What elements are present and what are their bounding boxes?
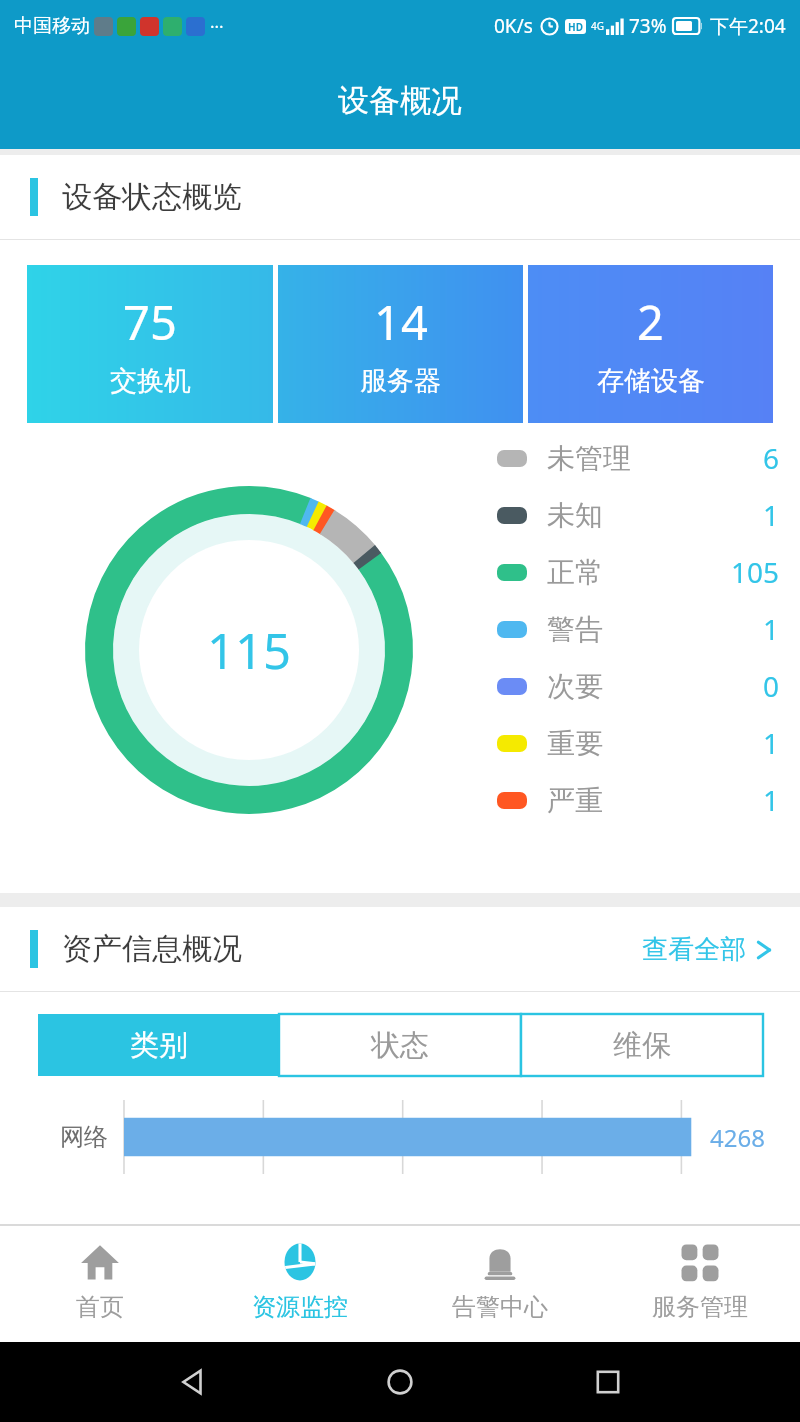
button[interactable]: 告警中心: [400, 1226, 600, 1342]
staticText: 资产信息概况: [62, 930, 242, 968]
staticText: 设备状态概览: [62, 178, 242, 216]
staticText: 1: [763, 496, 780, 534]
staticText: 4268: [710, 1121, 765, 1154]
staticText: 服务管理: [652, 1292, 748, 1322]
staticText: 未管理: [547, 441, 631, 476]
staticText: 维保: [613, 1027, 671, 1064]
staticText: 状态: [371, 1027, 429, 1064]
staticText: 4G: [591, 19, 604, 33]
button[interactable]: 资源监控: [200, 1226, 400, 1342]
staticText: 网络: [60, 1122, 124, 1152]
button[interactable]: 次要: [497, 667, 780, 705]
other: 资源监控: [278, 1240, 322, 1284]
staticText: 严重: [547, 783, 603, 818]
staticText: 14: [374, 290, 428, 354]
button[interactable]: 首页: [0, 1226, 200, 1342]
staticText: 0: [763, 667, 780, 705]
staticText: 存储设备: [597, 364, 705, 398]
staticText: 未知: [547, 498, 603, 533]
staticText: 警告: [547, 612, 603, 647]
staticText: 105: [731, 553, 780, 591]
button[interactable]: 服务管理: [600, 1226, 800, 1342]
staticText: 0K/s: [494, 13, 533, 39]
staticText: 75: [123, 290, 177, 354]
staticText: 6: [763, 439, 780, 477]
button[interactable]: 75: [27, 265, 273, 423]
staticText: 2: [637, 290, 664, 354]
button[interactable]: 查看全部: [638, 927, 776, 972]
button[interactable]: Back: [178, 1367, 208, 1397]
staticText: HD: [568, 20, 583, 34]
button[interactable]: 重要: [497, 724, 780, 762]
staticText: 1: [763, 781, 780, 819]
staticText: 115: [207, 617, 292, 684]
staticText: 正常: [547, 555, 603, 590]
staticText: 设备概况: [338, 81, 462, 120]
button[interactable]: 类别: [38, 1014, 279, 1076]
staticText: 73%: [629, 13, 667, 39]
button[interactable]: Recents: [593, 1367, 623, 1397]
staticText: 类别: [130, 1027, 188, 1064]
button[interactable]: 未知: [497, 496, 780, 534]
button[interactable]: 维保: [521, 1014, 763, 1076]
staticText: 1: [763, 610, 780, 648]
other: 首页: [78, 1240, 122, 1284]
button[interactable]: 严重: [497, 781, 780, 819]
button[interactable]: 2: [528, 265, 773, 423]
staticText: 1: [763, 724, 780, 762]
staticText: 下午2:04: [710, 13, 786, 39]
staticText: 首页: [76, 1292, 124, 1322]
button[interactable]: 14: [278, 265, 523, 423]
staticText: ···: [210, 15, 224, 38]
button[interactable]: 状态: [279, 1014, 521, 1076]
button[interactable]: Home: [385, 1367, 415, 1397]
button[interactable]: 正常: [497, 553, 780, 591]
staticText: 查看全部: [642, 933, 746, 966]
staticText: 服务器: [360, 364, 441, 398]
staticText: 中国移动: [14, 14, 90, 38]
staticText: 次要: [547, 669, 603, 704]
button[interactable]: 警告: [497, 610, 780, 648]
staticText: 告警中心: [452, 1292, 548, 1322]
staticText: 重要: [547, 726, 603, 761]
staticText: 交换机: [110, 364, 191, 398]
staticText: 资源监控: [252, 1292, 348, 1322]
button[interactable]: 未管理: [497, 439, 780, 477]
other: 告警中心: [478, 1240, 522, 1284]
other: 服务管理: [678, 1240, 722, 1284]
